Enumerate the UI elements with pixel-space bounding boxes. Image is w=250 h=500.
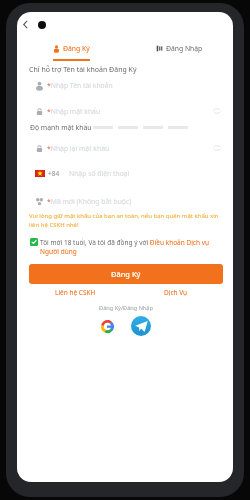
button[interactable]: Back [19,18,32,31]
button[interactable]: +84 [29,167,223,179]
button[interactable]: Đăng Ký [17,39,125,63]
staticText: Nhập số điện thoại [69,169,223,178]
staticText: *Nhập lại mật khẩu [47,144,213,153]
button[interactable]: Đăng Nhập [125,39,233,63]
staticText: Đăng Ký [111,269,141,279]
button[interactable]: *Nhập Tên tài khoản [29,79,223,91]
staticText: Chỉ hỗ trợ Tên tài khoản Đăng Ký [29,65,137,75]
staticText: Tôi mới 18 tuổi, Và tôi đã đồng ý với Đi… [40,238,223,256]
button[interactable]: Liên hệ CSKH [55,288,96,297]
staticText: +84 [48,169,60,178]
staticText: Đăng Ký/Đăng Nhập [29,304,223,312]
button[interactable]: *Mã mời (Không bắt buộc) [29,195,223,207]
staticText: *Nhập Tên tài khoản [47,81,223,90]
staticText: Dịch Vụ [164,288,188,297]
staticText: Đăng Ký [63,44,90,53]
button[interactable]: Sign in with Google [101,320,114,333]
button[interactable]: Dịch Vụ [164,288,188,297]
button[interactable]: *Nhập mật khẩu [29,105,223,117]
staticText: Đăng Nhập [166,44,203,53]
button[interactable]: Đăng Ký [29,264,223,284]
staticText: Vui lòng giữ mật khẩu của bạn an toàn, n… [29,212,223,229]
staticText: Liên hệ CSKH [55,288,96,297]
button[interactable]: Tôi mới 18 tuổi, Và tôi đã đồng ý với Đi… [29,238,223,256]
staticText: *Mã mời (Không bắt buộc) [47,197,223,206]
staticText: Độ mạnh mật khẩu [30,123,92,132]
button[interactable]: Sign in with Telegram [131,316,151,336]
button[interactable]: *Nhập lại mật khẩu [29,142,223,154]
staticText: *Nhập mật khẩu [47,107,213,116]
